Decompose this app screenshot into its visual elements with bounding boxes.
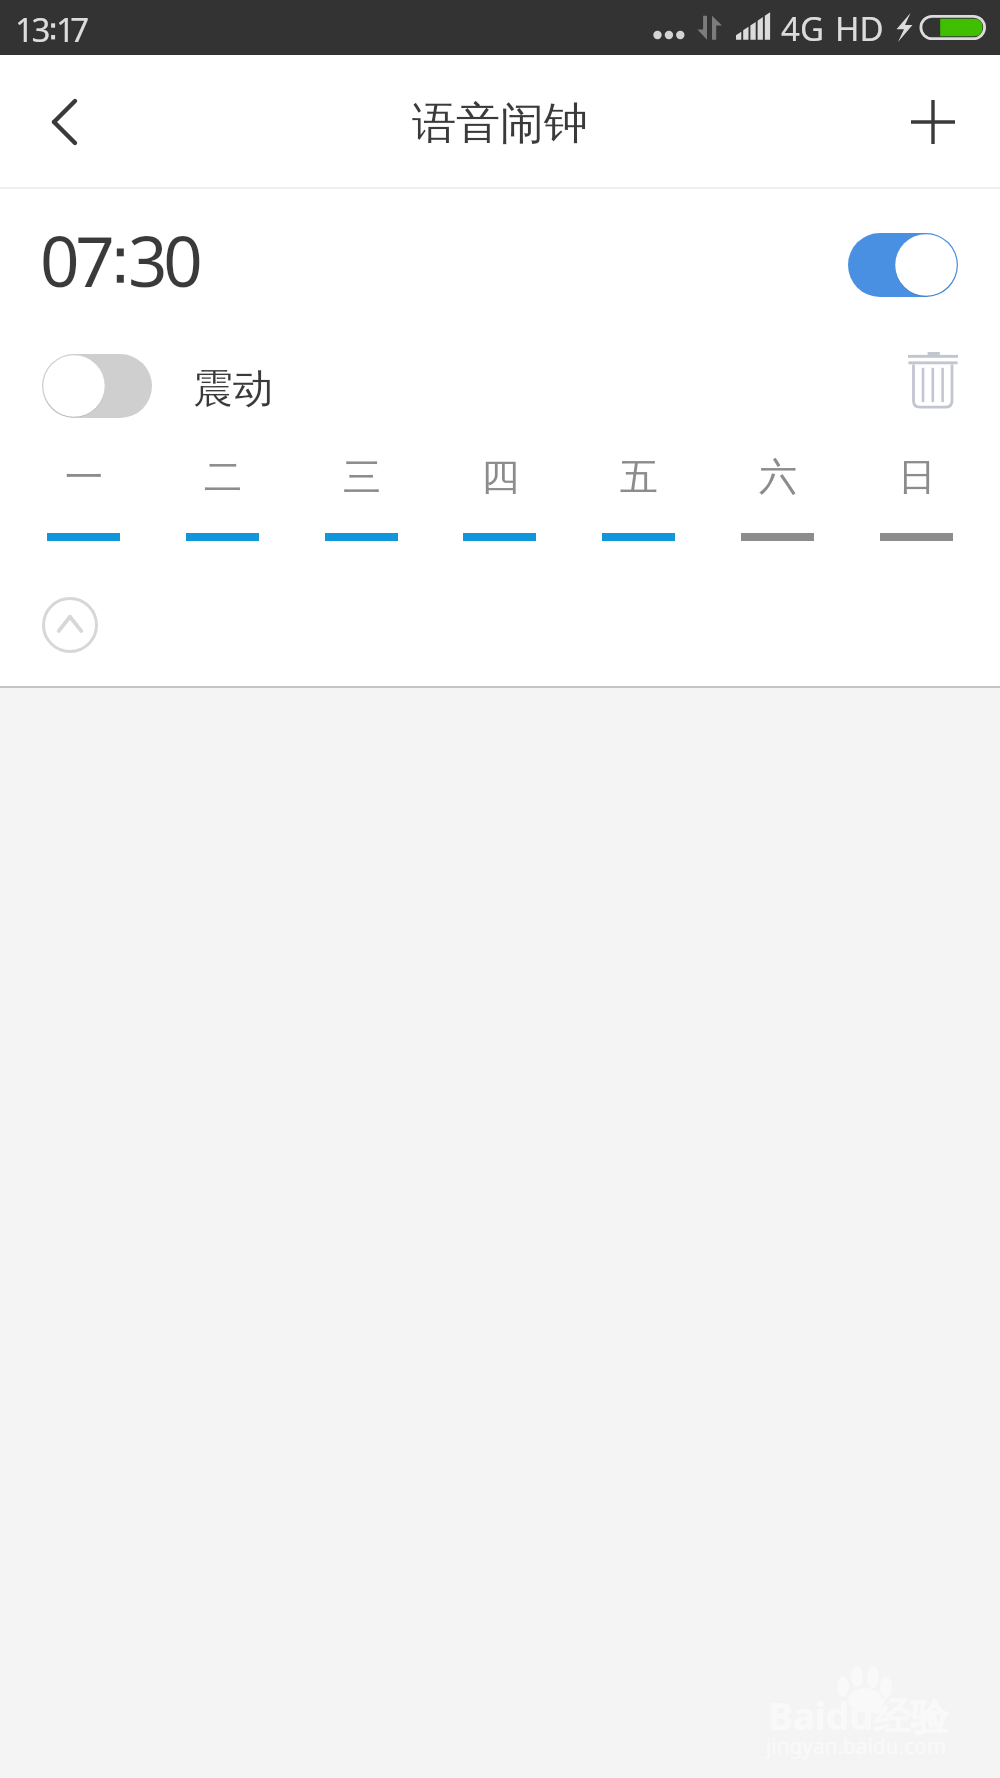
button[interactable]: 日 (847, 446, 986, 546)
staticText: 震动 (193, 363, 273, 413)
staticText: 三 (343, 453, 381, 501)
staticText: 一 (65, 453, 103, 501)
button[interactable]: Back (4, 67, 124, 177)
staticText: 四 (481, 453, 519, 501)
staticText: 二 (204, 453, 242, 501)
staticText: 07 (40, 213, 111, 307)
staticText: 语音闹钟 (412, 96, 588, 151)
button[interactable]: Vibration (42, 354, 152, 418)
button[interactable]: 四 (430, 446, 569, 546)
button[interactable]: Delete alarm (888, 336, 978, 424)
button[interactable]: 二 (153, 446, 292, 546)
staticText: 17 (56, 7, 85, 52)
staticText: HD (835, 6, 884, 51)
button[interactable]: 三 (292, 446, 431, 546)
button[interactable]: Alarm enabled (848, 233, 958, 297)
staticText: 日 (898, 453, 936, 501)
staticText: 六 (759, 453, 797, 501)
staticText: 30 (128, 213, 199, 307)
button[interactable]: Collapse (42, 597, 98, 653)
button[interactable]: Add alarm (873, 67, 993, 177)
staticText: 五 (620, 453, 658, 501)
button[interactable]: 五 (569, 446, 708, 546)
button[interactable]: 六 (708, 446, 847, 546)
button[interactable]: 一 (14, 446, 153, 546)
staticText: 4G (781, 6, 824, 51)
staticText: 13 (15, 7, 49, 52)
